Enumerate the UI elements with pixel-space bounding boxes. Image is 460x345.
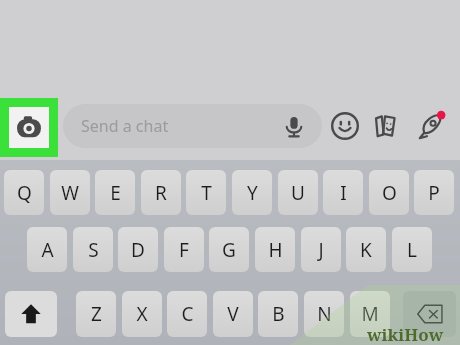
button[interactable]: Backspace — [403, 291, 456, 337]
button[interactable]: C — [167, 291, 207, 337]
button[interactable]: V — [213, 291, 253, 337]
button[interactable]: Shift — [5, 291, 57, 337]
button[interactable]: A — [27, 227, 67, 272]
button[interactable]: E — [95, 170, 135, 215]
button[interactable]: J — [301, 227, 341, 272]
staticText: C — [181, 301, 194, 327]
button[interactable]: G — [209, 227, 249, 272]
button[interactable]: S — [73, 227, 113, 272]
staticText: F — [179, 237, 189, 263]
button[interactable]: I — [323, 170, 363, 215]
staticText: U — [291, 180, 305, 206]
staticText: R — [155, 180, 167, 206]
staticText: A — [41, 237, 54, 263]
button[interactable]: Cameos — [369, 110, 401, 142]
button[interactable]: Y — [232, 170, 272, 215]
button[interactable]: W — [50, 170, 90, 215]
staticText: G — [222, 237, 236, 263]
button[interactable]: Voice input — [280, 112, 308, 140]
button[interactable]: U — [278, 170, 318, 215]
button[interactable]: D — [118, 227, 158, 272]
staticText: E — [110, 180, 121, 206]
staticText: Y — [247, 180, 258, 206]
staticText: S — [88, 237, 99, 263]
button[interactable]: M — [350, 291, 390, 337]
staticText: O — [382, 180, 397, 206]
staticText: H — [268, 237, 283, 263]
staticText: I — [340, 180, 347, 206]
staticText: M — [361, 301, 379, 327]
button[interactable]: Z — [76, 291, 116, 337]
staticText: W — [61, 180, 79, 206]
button[interactable]: Send a chat — [63, 104, 322, 148]
staticText: D — [131, 237, 145, 263]
staticText: J — [318, 237, 324, 263]
button[interactable]: R — [141, 170, 181, 215]
button[interactable]: H — [255, 227, 295, 272]
staticText: L — [407, 237, 417, 263]
staticText: N — [317, 301, 332, 327]
staticText: V — [227, 301, 239, 327]
button[interactable]: L — [392, 227, 432, 272]
button[interactable]: T — [186, 170, 226, 215]
button[interactable]: B — [258, 291, 298, 337]
button[interactable]: F — [164, 227, 204, 272]
staticText: B — [272, 301, 285, 327]
button[interactable]: Send — [414, 109, 448, 143]
staticText: T — [201, 180, 212, 206]
button[interactable]: N — [304, 291, 344, 337]
button[interactable]: Stickers and emoji — [329, 110, 361, 142]
staticText: wikiHow — [367, 323, 444, 345]
staticText: Send a chat — [81, 115, 169, 137]
button[interactable]: X — [122, 291, 162, 337]
button[interactable]: P — [414, 170, 454, 215]
staticText: K — [360, 237, 372, 263]
button[interactable]: O — [369, 170, 409, 215]
button[interactable]: K — [346, 227, 386, 272]
button[interactable]: Camera — [0, 98, 58, 157]
staticText: X — [136, 301, 148, 327]
staticText: Z — [91, 301, 102, 327]
staticText: P — [428, 180, 440, 206]
staticText: Q — [17, 180, 32, 206]
button[interactable]: Q — [4, 170, 44, 215]
